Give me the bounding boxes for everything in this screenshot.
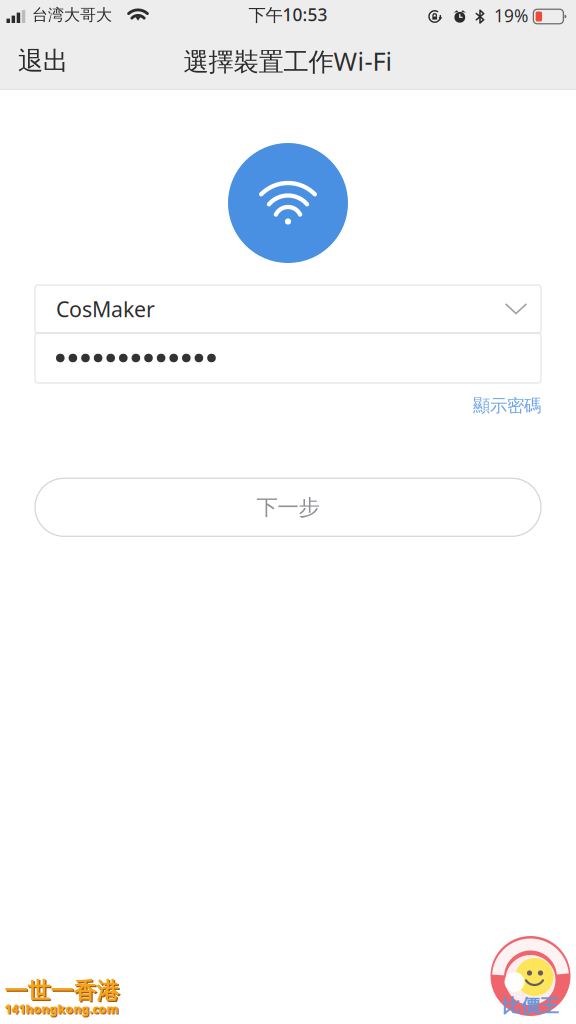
staticText: 選擇裝置工作Wi-Fi [183,44,392,78]
staticText: 一世一香港 [6,978,121,1006]
button[interactable]: 顯示密碼 [473,393,541,418]
staticText: 141hongkong.com [4,1001,118,1017]
staticText: 141hongkong.com [5,1002,119,1018]
staticText: 顯示密碼 [473,395,541,416]
staticText: CosMaker [56,295,155,323]
button[interactable]: 下一步 [35,478,541,536]
button[interactable]: CosMaker [35,285,541,333]
staticText: 比價王 [502,994,559,1017]
staticText: 台湾大哥大 [32,5,112,25]
staticText: 19% [494,4,528,27]
staticText: 下午10:53 [248,3,327,26]
staticText: 一世一香港 [4,977,119,1005]
button[interactable]: 退出 [0,31,86,90]
staticText: 退出 [18,45,68,76]
staticText: 下一步 [256,494,319,520]
